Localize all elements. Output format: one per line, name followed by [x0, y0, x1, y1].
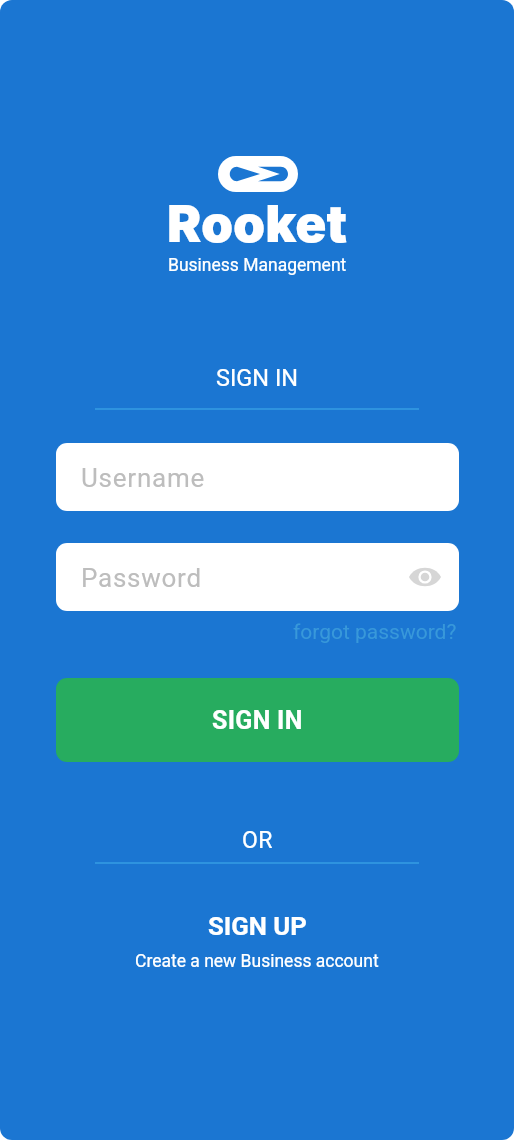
staticText: Password: [81, 563, 202, 593]
button[interactable]: Password: [56, 543, 459, 611]
staticText: SIGN IN: [212, 706, 303, 735]
button[interactable]: SIGN UP: [208, 911, 307, 941]
button[interactable]: Show password: [402, 554, 448, 600]
staticText: SIGN IN: [216, 364, 299, 392]
staticText: Business Management: [168, 255, 347, 276]
button[interactable]: SIGN IN: [56, 678, 459, 762]
staticText: Username: [81, 463, 205, 493]
button[interactable]: forgot password?: [293, 620, 457, 645]
button[interactable]: Username: [56, 443, 459, 511]
button[interactable]: Create a new Business account: [135, 951, 379, 972]
staticText: OR: [242, 827, 273, 854]
staticText: Rooket: [167, 192, 348, 254]
